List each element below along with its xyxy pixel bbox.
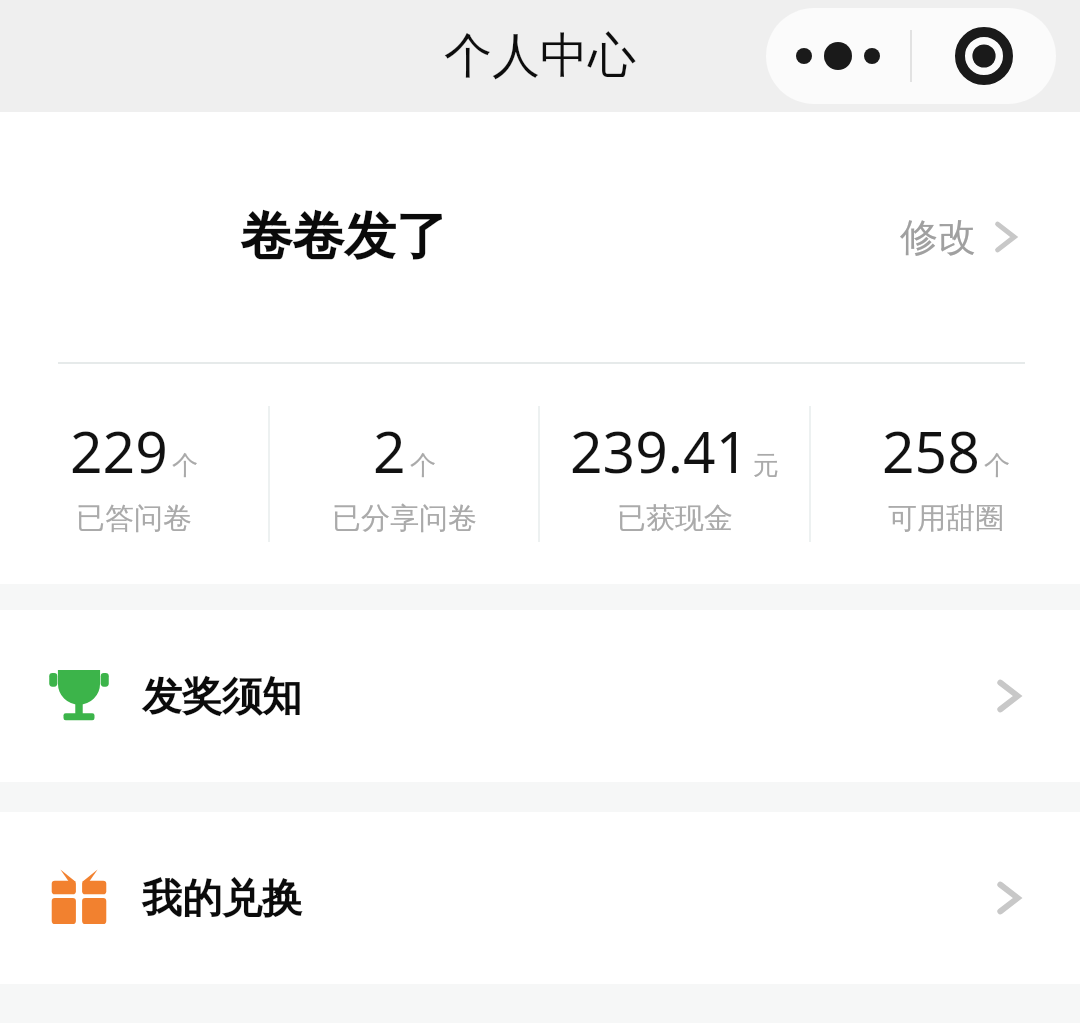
staticText: 个人中心 [444,26,636,86]
staticText: 已获现金 [617,500,733,537]
staticText: 258 [882,412,980,490]
button[interactable]: More [766,8,910,104]
staticText: 个 [984,449,1010,482]
staticText: 元 [753,449,779,482]
button[interactable]: Close mini program [912,8,1056,104]
staticText: 已分享问卷 [332,500,477,537]
staticText: 229 [70,412,168,490]
staticText: 239.41 [570,412,749,490]
button[interactable]: 2 [270,412,538,537]
staticText: 我的兑换 [142,873,302,923]
staticText: 个 [410,449,436,482]
staticText: 可用甜圈 [888,500,1004,537]
button[interactable]: 239.41 [540,412,809,537]
staticText: 卷卷发了 [240,204,448,270]
staticText: 已答问卷 [76,500,192,537]
staticText: 修改 [900,213,976,261]
button[interactable]: 卷卷发了 [0,112,1080,362]
staticText: 个 [172,449,198,482]
staticText: 2 [373,412,406,490]
button[interactable]: 发奖须知 [0,610,1080,782]
staticText: 发奖须知 [142,671,302,721]
button[interactable]: 229 [0,412,268,537]
button[interactable]: 我的兑换 [0,812,1080,984]
button[interactable]: 258 [811,412,1080,537]
